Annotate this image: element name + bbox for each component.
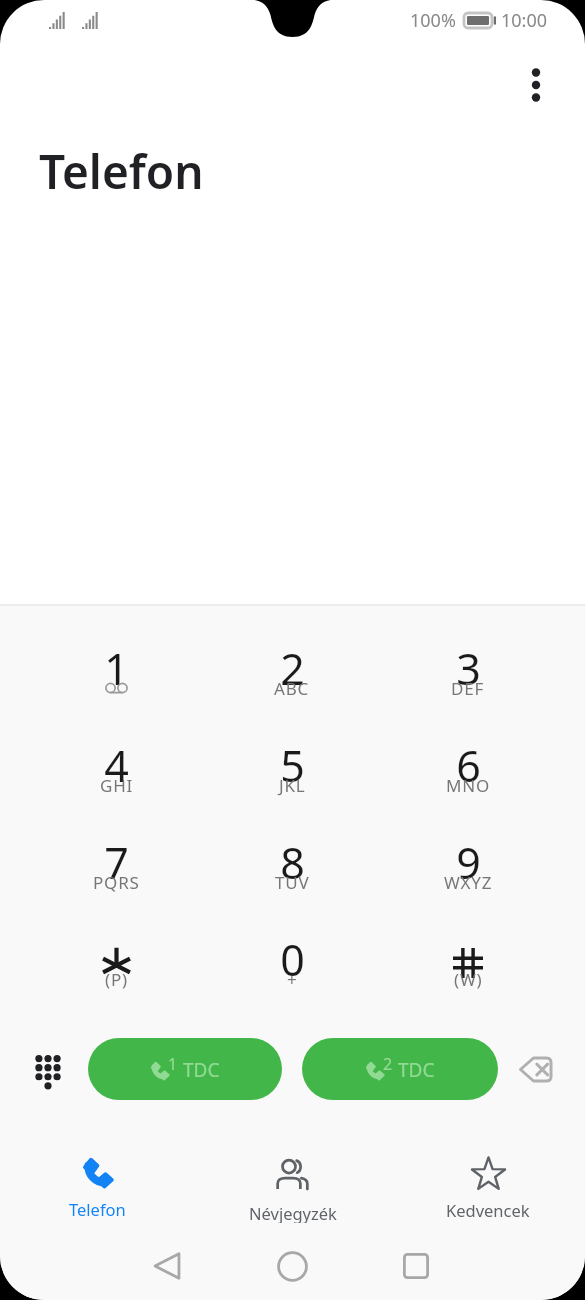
button[interactable]: 1 — [88, 1038, 282, 1100]
button[interactable]: Recents — [376, 1236, 456, 1296]
button[interactable]: 9 — [380, 833, 556, 930]
staticText: TDC — [398, 1057, 435, 1083]
button[interactable]: (W) — [380, 930, 556, 1027]
button[interactable]: Home — [252, 1236, 332, 1296]
button[interactable]: (P) — [29, 930, 204, 1027]
staticText: JKL — [279, 774, 306, 797]
staticText: PQRS — [93, 871, 140, 894]
button[interactable]: Névjegyzék — [195, 1145, 390, 1223]
staticText: 0 — [280, 930, 305, 989]
button[interactable]: 2 — [204, 639, 380, 736]
button[interactable]: 0 — [204, 930, 380, 1027]
staticText: Telefon — [39, 140, 204, 203]
staticText: 10:00 — [501, 8, 548, 33]
staticText: 100% — [410, 8, 456, 33]
staticText: 4 — [104, 736, 129, 795]
staticText: DEF — [451, 677, 485, 700]
staticText: WXYZ — [444, 871, 493, 894]
staticText: 2 — [383, 1053, 393, 1075]
staticText: 9 — [456, 833, 481, 892]
button[interactable]: 3 — [380, 639, 556, 736]
button[interactable]: 5 — [204, 736, 380, 833]
button[interactable]: Backspace — [506, 1038, 568, 1100]
staticText: 1 — [104, 639, 129, 698]
staticText: Kedvencek — [446, 1199, 530, 1221]
button[interactable]: Dialpad — [17, 1038, 79, 1100]
staticText: Telefon — [69, 1198, 126, 1220]
staticText: 6 — [456, 736, 481, 795]
staticText: TUV — [275, 871, 310, 894]
button[interactable]: 4 — [29, 736, 204, 833]
staticText: (P) — [105, 968, 128, 991]
staticText: GHI — [100, 774, 134, 797]
staticText: 3 — [456, 639, 481, 698]
staticText: 5 — [280, 736, 305, 795]
button[interactable]: Telefon — [0, 1145, 195, 1223]
button[interactable]: 7 — [29, 833, 204, 930]
button[interactable]: 8 — [204, 833, 380, 930]
button[interactable]: Back — [127, 1236, 207, 1296]
staticText: Névjegyzék — [249, 1202, 337, 1223]
button[interactable]: 1 — [29, 639, 204, 736]
button[interactable]: More options — [508, 57, 564, 113]
staticText: MNO — [446, 774, 491, 797]
staticText: TDC — [183, 1057, 220, 1083]
button[interactable]: 6 — [380, 736, 556, 833]
button[interactable]: Kedvencek — [390, 1145, 585, 1223]
staticText: + — [287, 968, 298, 991]
staticText: 1 — [168, 1053, 178, 1075]
staticText: 2 — [280, 639, 305, 698]
staticText: ABC — [274, 677, 310, 700]
staticText: (W) — [454, 968, 483, 991]
staticText: 8 — [280, 833, 305, 892]
button[interactable]: 2 — [302, 1038, 498, 1100]
staticText: 7 — [104, 833, 129, 892]
